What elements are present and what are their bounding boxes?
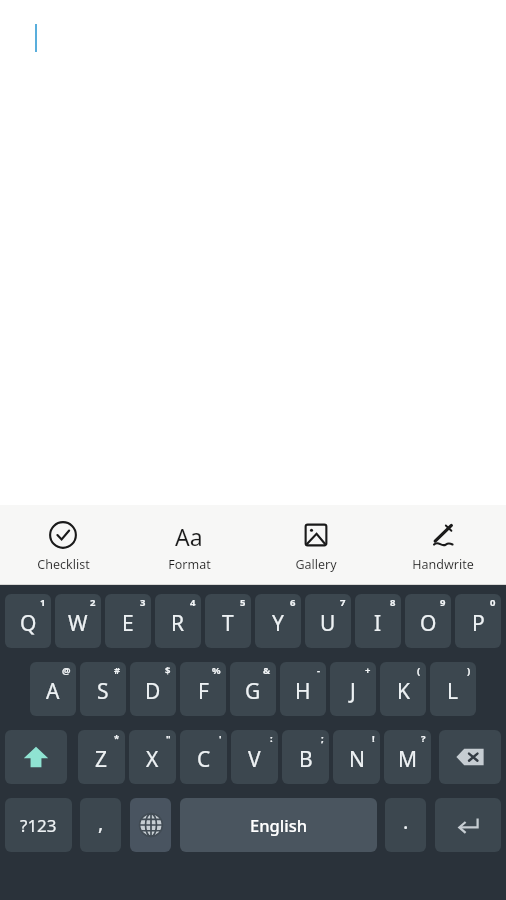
button[interactable]: C (180, 730, 227, 784)
staticText: I (374, 609, 382, 638)
button[interactable]: G (230, 662, 276, 716)
staticText: K (397, 677, 410, 706)
staticText: Gallery (295, 556, 337, 573)
button[interactable]: N (333, 730, 380, 784)
staticText: 9 (440, 596, 446, 609)
staticText: ) (467, 664, 471, 677)
staticText: U (320, 609, 336, 638)
button[interactable]: Q (5, 594, 51, 648)
button[interactable]: U (305, 594, 351, 648)
staticText: 8 (390, 596, 396, 609)
staticText: X (146, 745, 159, 774)
staticText: W (68, 609, 88, 638)
staticText: S (97, 677, 109, 706)
staticText: 2 (90, 596, 96, 609)
staticText: Handwrite (412, 556, 474, 573)
staticText: " (166, 732, 171, 745)
button[interactable]: Enter (435, 798, 501, 852)
staticText: V (248, 745, 261, 774)
staticText: P (472, 609, 485, 638)
button[interactable]: A (30, 662, 76, 716)
staticText: ?123 (20, 814, 57, 837)
staticText: ' (219, 732, 222, 745)
staticText: ! (372, 732, 375, 745)
staticText: Aa (175, 521, 203, 549)
staticText: - (317, 664, 321, 677)
staticText: M (398, 745, 418, 774)
staticText: 1 (40, 596, 46, 609)
button[interactable]: I (355, 594, 401, 648)
button[interactable]: Checklist (0, 505, 126, 585)
button[interactable]: V (231, 730, 278, 784)
staticText: & (263, 664, 271, 677)
button[interactable]: S (80, 662, 126, 716)
staticText: N (349, 745, 365, 774)
button[interactable]: Y (255, 594, 301, 648)
staticText: . (403, 808, 409, 835)
button[interactable]: T (205, 594, 251, 648)
button[interactable]: O (405, 594, 451, 648)
staticText: H (295, 677, 311, 706)
staticText: : (270, 732, 273, 745)
button[interactable]: D (130, 662, 176, 716)
staticText: 4 (190, 596, 196, 609)
staticText: L (447, 677, 459, 706)
staticText: D (145, 677, 161, 706)
button[interactable]: X (129, 730, 176, 784)
staticText: T (222, 609, 234, 638)
staticText: 3 (140, 596, 146, 609)
staticText: # (114, 664, 121, 677)
button[interactable]: E (105, 594, 151, 648)
staticText: 6 (290, 596, 296, 609)
staticText: G (245, 677, 261, 706)
staticText: % (212, 664, 221, 677)
button[interactable]: , (80, 798, 121, 852)
staticText: + (365, 664, 371, 677)
staticText: * (114, 732, 120, 745)
button[interactable]: K (380, 662, 426, 716)
staticText: O (420, 609, 437, 638)
button[interactable]: Backspace (439, 730, 501, 784)
staticText: B (299, 745, 313, 774)
staticText: A (46, 677, 60, 706)
button[interactable]: English (180, 798, 377, 852)
staticText: Y (272, 609, 284, 638)
staticText: Q (20, 609, 37, 638)
staticText: ; (321, 732, 324, 745)
button[interactable]: Z (78, 730, 125, 784)
button[interactable]: P (455, 594, 501, 648)
staticText: 5 (240, 596, 246, 609)
button[interactable]: B (282, 730, 329, 784)
button[interactable]: W (55, 594, 101, 648)
staticText: Checklist (37, 556, 90, 573)
button[interactable]: H (280, 662, 326, 716)
button[interactable]: Gallery (252, 505, 379, 585)
staticText: R (171, 609, 185, 638)
button[interactable]: Handwrite (379, 505, 506, 585)
staticText: 0 (490, 596, 496, 609)
staticText: ( (417, 664, 421, 677)
staticText: $ (165, 664, 171, 677)
staticText: English (250, 814, 308, 836)
button[interactable]: Aa (126, 505, 252, 585)
button[interactable]: M (384, 730, 431, 784)
button[interactable]: F (180, 662, 226, 716)
staticText: Z (95, 745, 108, 774)
staticText: @ (62, 664, 71, 677)
staticText: , (98, 809, 104, 836)
button[interactable]: ?123 (5, 798, 72, 852)
button[interactable]: L (430, 662, 476, 716)
staticText: F (198, 677, 209, 706)
button[interactable]: Shift (5, 730, 67, 784)
staticText: ? (421, 732, 426, 745)
staticText: 7 (340, 596, 346, 609)
staticText: J (350, 677, 356, 706)
staticText: E (122, 609, 134, 638)
button[interactable]: . (385, 798, 426, 852)
staticText: C (197, 745, 211, 774)
button[interactable]: R (155, 594, 201, 648)
staticText: Format (168, 556, 211, 573)
button[interactable]: J (330, 662, 376, 716)
button[interactable]: Change language (130, 798, 171, 852)
